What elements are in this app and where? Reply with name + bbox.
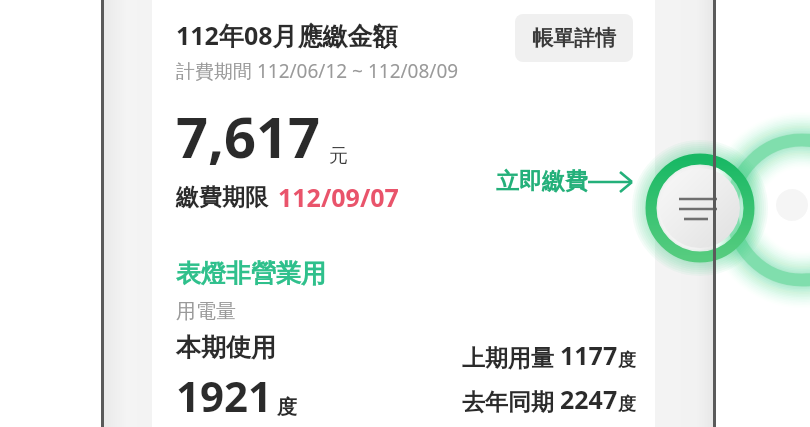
staticText: 2247 xyxy=(560,382,618,416)
staticText: 立即繳費 xyxy=(496,167,588,196)
staticText: 1177 xyxy=(560,338,618,372)
staticText: 表燈非營業用 xyxy=(176,258,326,289)
staticText: 去年同期 xyxy=(462,385,560,416)
button[interactable]: Menu xyxy=(646,154,754,262)
staticText: 7,617 xyxy=(176,98,321,174)
staticText: 用電量 xyxy=(176,299,236,324)
staticText: 112/09/07 xyxy=(278,180,399,214)
staticText: 度 xyxy=(618,349,636,372)
staticText: 繳費期限 xyxy=(176,183,268,212)
staticText: 1921 xyxy=(176,367,273,424)
staticText: 度 xyxy=(277,395,297,420)
staticText: 上期用量 xyxy=(462,341,560,372)
staticText: 帳單詳情 xyxy=(532,25,616,51)
staticText: 度 xyxy=(618,393,636,416)
staticText: 本期使用 xyxy=(176,332,276,363)
button[interactable]: 帳單詳情 xyxy=(515,14,633,62)
staticText: 元 xyxy=(329,144,348,168)
staticText: 112年08月應繳金額 xyxy=(176,18,398,52)
staticText: 計費期間 112/06/12 ~ 112/08/09 xyxy=(176,58,459,84)
button[interactable]: 立即繳費 xyxy=(492,163,638,200)
